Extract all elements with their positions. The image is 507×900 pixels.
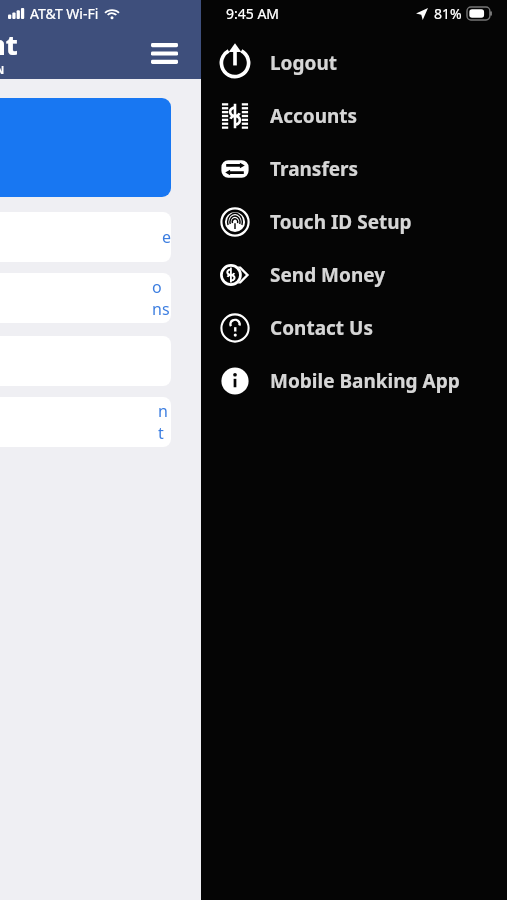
button[interactable]: nt xyxy=(0,397,171,447)
button[interactable]: Accounts xyxy=(201,89,507,142)
button[interactable]: ons xyxy=(0,273,171,323)
staticText: ON xyxy=(0,63,5,77)
button[interactable]: Contact Us xyxy=(201,301,507,354)
staticText: Logout xyxy=(270,50,337,76)
staticText: nt xyxy=(158,400,171,444)
staticText: Transfers xyxy=(270,156,359,182)
staticText: nt xyxy=(0,26,18,63)
staticText: 81% xyxy=(434,4,462,23)
staticText: Accounts xyxy=(270,103,358,129)
staticText: AT&T Wi-Fi xyxy=(30,4,99,23)
button[interactable]: Send Money xyxy=(201,248,507,301)
staticText: Send Money xyxy=(270,262,386,288)
button[interactable]: Open navigation menu xyxy=(144,33,184,73)
button[interactable]: Touch ID Setup xyxy=(201,195,507,248)
button[interactable]: Mobile Banking App xyxy=(201,354,507,407)
staticText: 9:45 AM xyxy=(226,4,280,23)
button[interactable] xyxy=(0,98,171,197)
button[interactable]: e xyxy=(0,212,171,262)
button[interactable]: Transfers xyxy=(201,142,507,195)
staticText: ons xyxy=(152,276,171,320)
staticText: Contact Us xyxy=(270,315,373,341)
button[interactable]: Logout xyxy=(201,36,507,89)
staticText: e xyxy=(162,226,171,248)
staticText: Touch ID Setup xyxy=(270,209,412,235)
staticText: Mobile Banking App xyxy=(270,368,460,394)
